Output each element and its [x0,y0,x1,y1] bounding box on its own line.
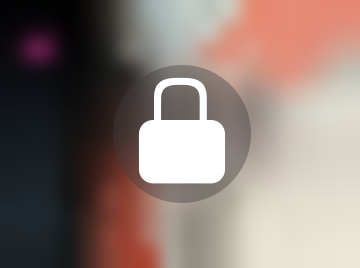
button[interactable]: Locked [113,65,251,203]
